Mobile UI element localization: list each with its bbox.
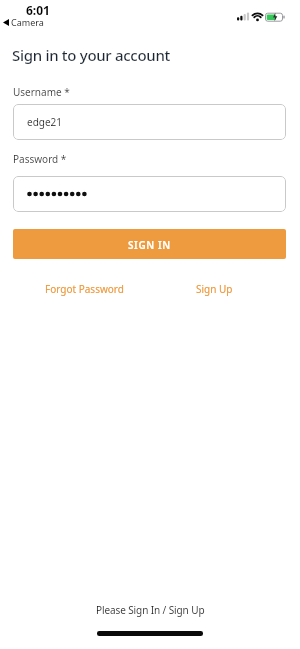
button[interactable]: Sign Up bbox=[196, 282, 233, 296]
staticText: Sign in to your account bbox=[12, 45, 170, 65]
button[interactable]: Forgot Password bbox=[45, 282, 124, 296]
staticText: Username * bbox=[13, 85, 70, 99]
staticText: edge21 bbox=[27, 115, 63, 129]
staticText: Camera bbox=[11, 16, 44, 28]
button[interactable]: edge21 bbox=[13, 104, 286, 140]
button[interactable]: Camera bbox=[3, 16, 44, 28]
button[interactable]: SIGN IN bbox=[13, 229, 286, 259]
staticText: SIGN IN bbox=[128, 238, 171, 252]
staticText: Password * bbox=[13, 152, 67, 166]
button[interactable] bbox=[13, 176, 286, 212]
staticText: 6:01 bbox=[26, 2, 50, 18]
button[interactable]: Please Sign In / Sign Up bbox=[96, 603, 205, 617]
